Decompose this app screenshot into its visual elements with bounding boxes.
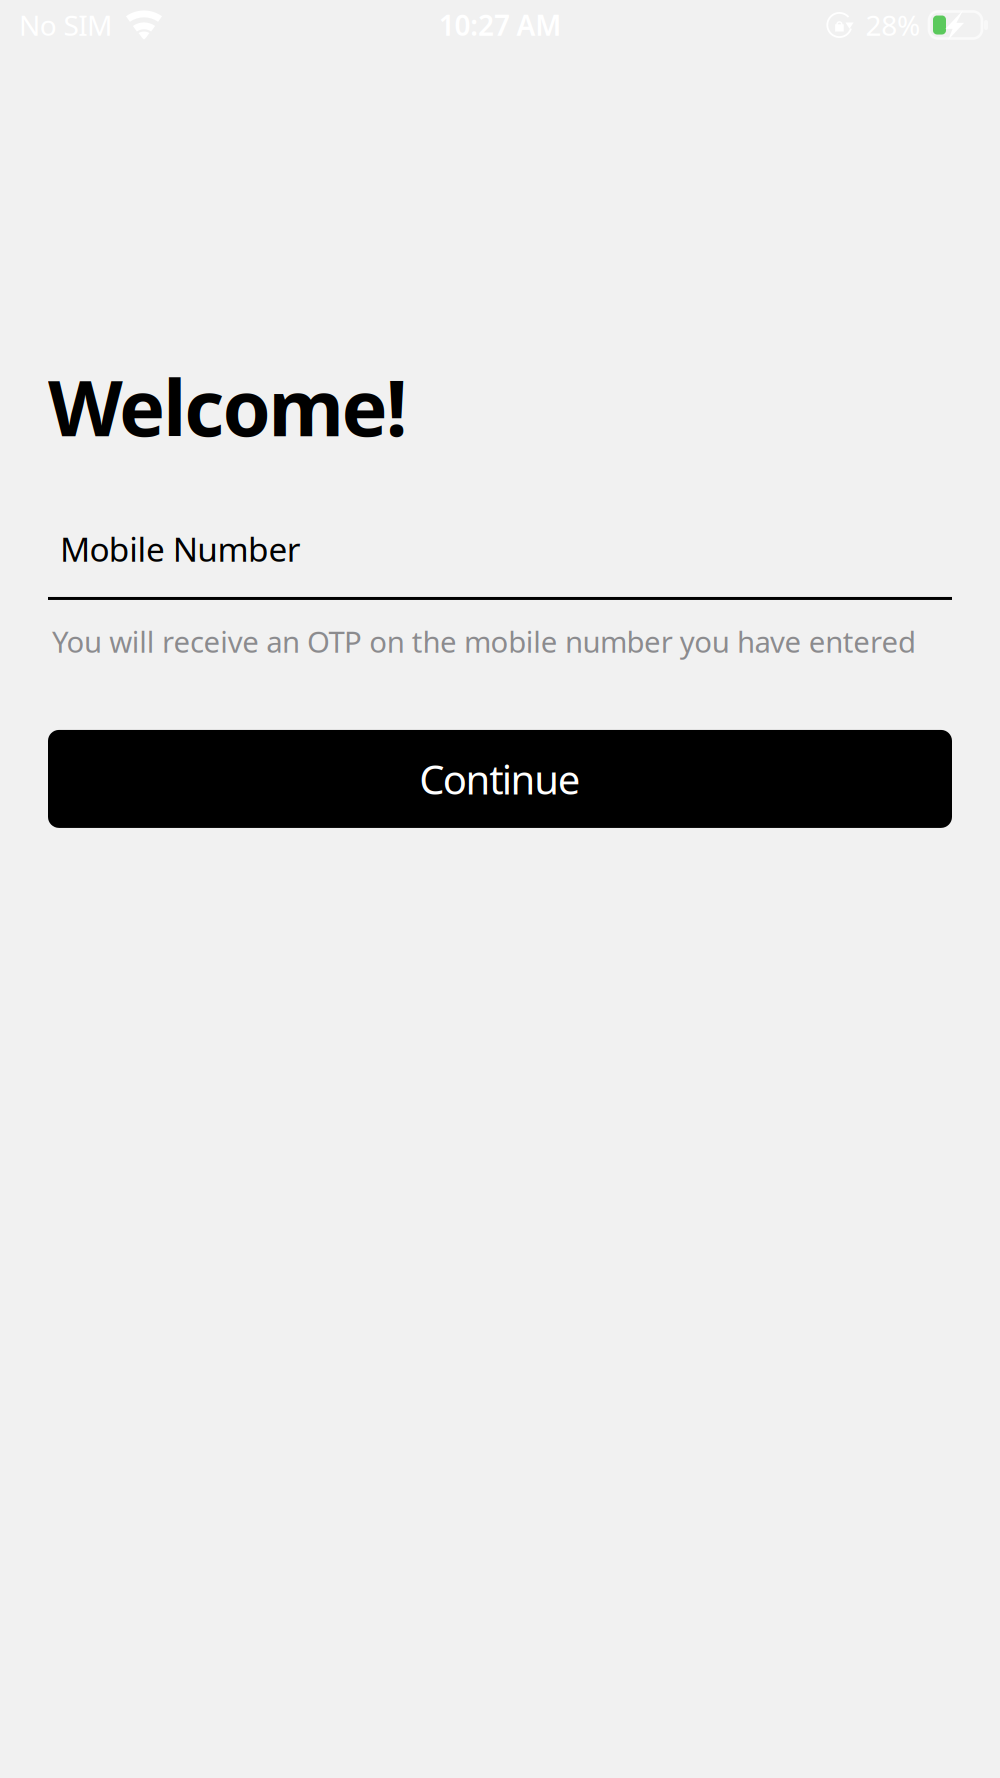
staticText: Welcome! (48, 355, 408, 458)
button[interactable]: Continue (48, 730, 952, 828)
staticText: No SIM (19, 6, 112, 44)
staticText: Mobile Number (60, 527, 301, 571)
staticText: You will receive an OTP on the mobile nu… (52, 622, 916, 661)
button[interactable]: Mobile Number (48, 527, 952, 600)
staticText: 28% (865, 6, 920, 44)
staticText: 10:27 AM (439, 6, 561, 44)
staticText: Continue (419, 752, 581, 805)
